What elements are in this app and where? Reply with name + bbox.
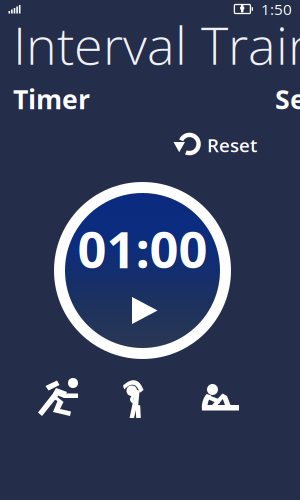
staticText: Interval Training [13,9,300,80]
button[interactable]: Stretch [121,376,153,418]
button[interactable]: Reset [174,130,257,160]
staticText: Timer [13,81,90,117]
button[interactable]: Core [199,376,243,418]
staticText: 01:00 [77,214,207,283]
button[interactable]: Timer [13,71,90,117]
button[interactable]: 01:00 [54,182,231,359]
staticText: 1:50 [261,0,292,19]
staticText: Sets [275,81,300,117]
button[interactable]: Sets [275,71,300,117]
staticText: Reset [207,132,257,158]
button[interactable]: Run [38,376,83,418]
